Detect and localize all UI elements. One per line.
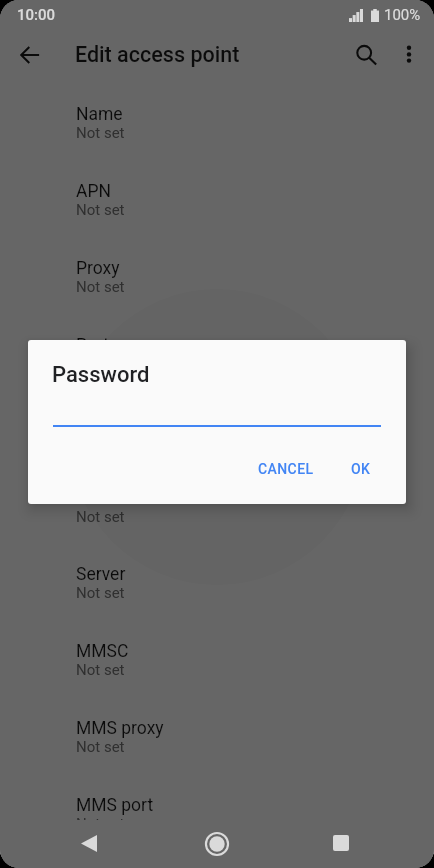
staticText: Not set <box>76 278 125 296</box>
staticText: APN <box>76 181 111 202</box>
staticText: Not set <box>76 201 125 219</box>
staticText: Not set <box>76 584 125 602</box>
button[interactable]: Name <box>0 88 434 165</box>
staticText: Password <box>52 362 150 388</box>
staticText: Name <box>76 104 123 125</box>
staticText: Not set <box>76 124 125 142</box>
staticText: Not set <box>76 815 125 833</box>
staticText: Username <box>76 411 156 432</box>
button[interactable]: Username <box>0 395 434 472</box>
staticText: Not set <box>76 738 125 756</box>
button[interactable]: Proxy <box>0 242 434 319</box>
staticText: Edit access point <box>75 42 240 67</box>
button[interactable]: Port <box>0 319 434 395</box>
button[interactable]: OK <box>341 452 381 486</box>
button[interactable]: Search <box>340 34 388 82</box>
staticText: Not set <box>76 355 125 373</box>
button[interactable]: CANCEL <box>248 452 324 486</box>
button[interactable]: Back <box>65 820 113 868</box>
staticText: MMSC <box>76 641 129 662</box>
button[interactable]: APN <box>0 165 434 242</box>
button[interactable]: Recent apps <box>317 820 365 868</box>
staticText: Password <box>76 488 154 509</box>
staticText: Server <box>76 564 126 585</box>
staticText: 100% <box>384 6 421 24</box>
staticText: Not set <box>76 661 125 679</box>
staticText: Not set <box>76 508 125 526</box>
staticText: CANCEL <box>258 461 314 477</box>
button[interactable]: MMS port <box>0 779 434 856</box>
staticText: 10:00 <box>17 6 56 24</box>
button[interactable]: Server <box>0 548 434 625</box>
button[interactable]: More options <box>386 34 434 82</box>
staticText: Port <box>76 335 109 356</box>
staticText: MMS proxy <box>76 718 164 739</box>
button[interactable]: Password <box>0 472 434 548</box>
button[interactable]: MMS proxy <box>0 702 434 779</box>
button[interactable]: Home <box>193 820 241 868</box>
staticText: MMS port <box>76 795 154 816</box>
staticText: OK <box>351 461 371 477</box>
button[interactable]: Navigate up <box>6 34 54 82</box>
staticText: Proxy <box>76 258 120 279</box>
button[interactable]: MMSC <box>0 625 434 702</box>
